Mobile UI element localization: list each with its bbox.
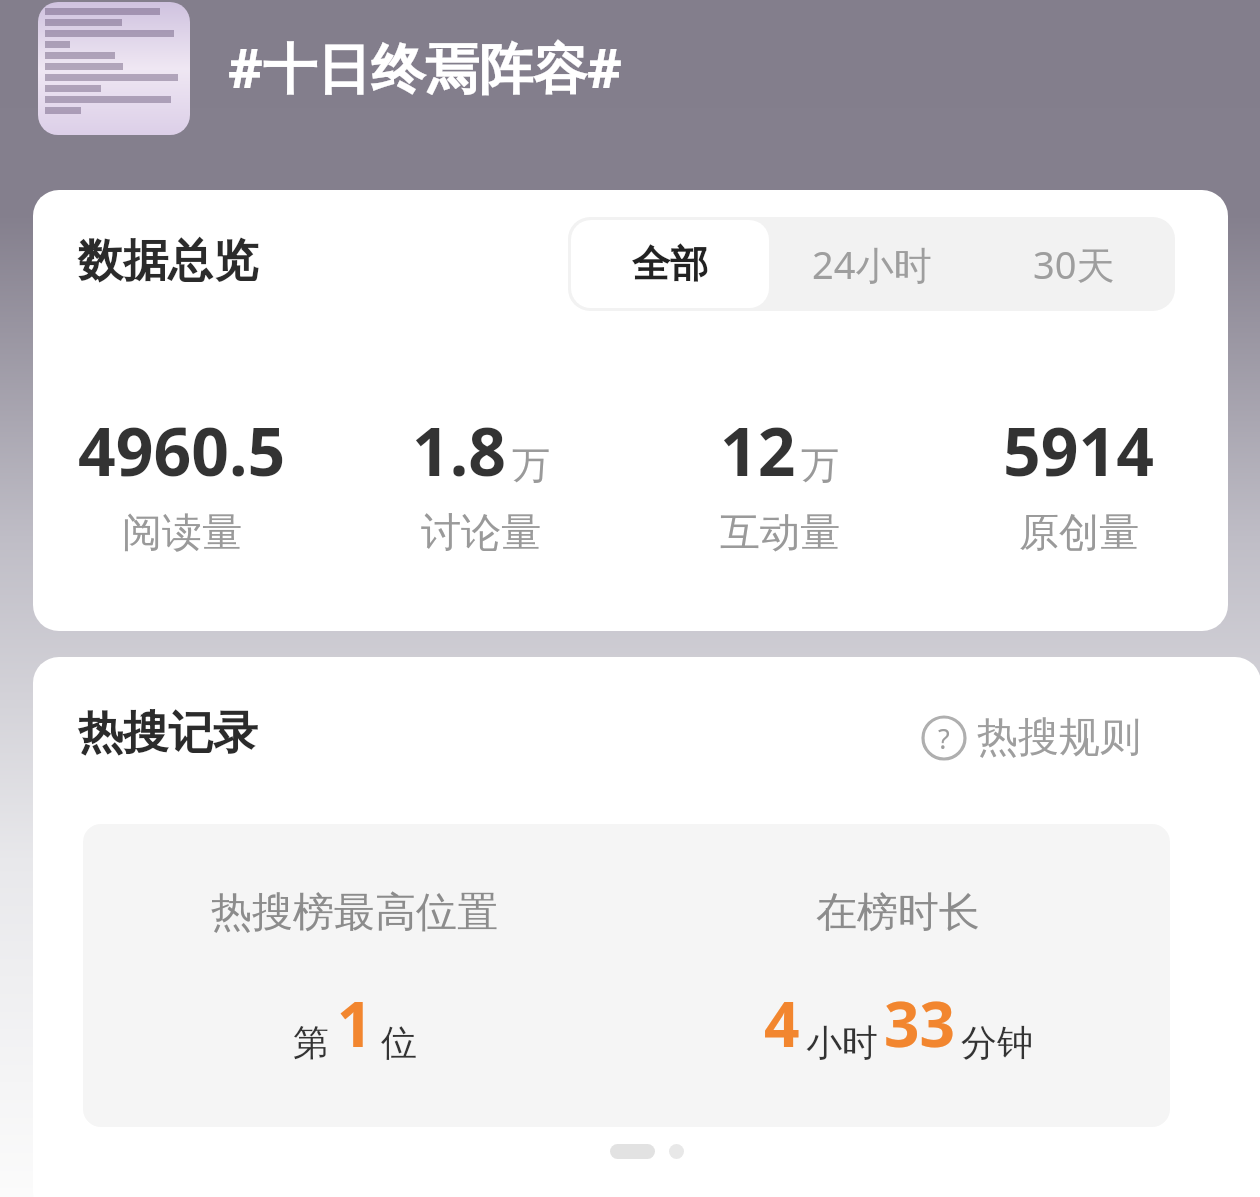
button[interactable]: 全部 bbox=[571, 220, 769, 308]
staticText: 万 bbox=[512, 441, 550, 489]
staticText: 12 bbox=[720, 405, 796, 495]
button[interactable]: 热搜规则说明 bbox=[921, 712, 1141, 764]
button[interactable]: 1.8 bbox=[331, 405, 630, 555]
staticText: 5914 bbox=[1003, 405, 1155, 495]
staticText: 4960.5 bbox=[78, 405, 286, 495]
staticText: 第 bbox=[293, 1020, 329, 1065]
staticText: 1.8 bbox=[412, 405, 507, 495]
button[interactable]: 12 bbox=[630, 405, 929, 555]
staticText: 热搜规则 bbox=[977, 712, 1141, 764]
staticText: 互动量 bbox=[720, 507, 840, 555]
staticText: 数据总览 bbox=[78, 233, 258, 290]
staticText: ? bbox=[938, 720, 950, 757]
staticText: 在榜时长 bbox=[816, 887, 980, 939]
staticText: 33 bbox=[884, 981, 955, 1065]
staticText: 分钟 bbox=[961, 1020, 1033, 1065]
button[interactable]: 24小时 bbox=[772, 217, 972, 311]
other: 热搜规则说明 bbox=[921, 715, 967, 761]
staticText: 24小时 bbox=[812, 238, 932, 290]
staticText: 1 bbox=[337, 981, 373, 1065]
staticText: 讨论量 bbox=[421, 507, 541, 555]
staticText: 万 bbox=[801, 441, 839, 489]
staticText: #十日终焉阵容# bbox=[228, 30, 622, 104]
staticText: 阅读量 bbox=[122, 507, 242, 555]
staticText: 4 bbox=[764, 981, 800, 1065]
staticText: 位 bbox=[381, 1020, 417, 1065]
button[interactable] bbox=[38, 2, 190, 135]
staticText: 30天 bbox=[1033, 238, 1115, 290]
staticText: 全部 bbox=[632, 240, 708, 288]
button[interactable]: 30天 bbox=[972, 217, 1175, 311]
button[interactable]: 4960.5 bbox=[33, 405, 331, 555]
button[interactable]: 5914 bbox=[929, 405, 1228, 555]
staticText: 原创量 bbox=[1019, 507, 1139, 555]
staticText: 热搜记录 bbox=[78, 705, 258, 762]
staticText: 小时 bbox=[806, 1020, 878, 1065]
staticText: 热搜榜最高位置 bbox=[211, 887, 498, 939]
